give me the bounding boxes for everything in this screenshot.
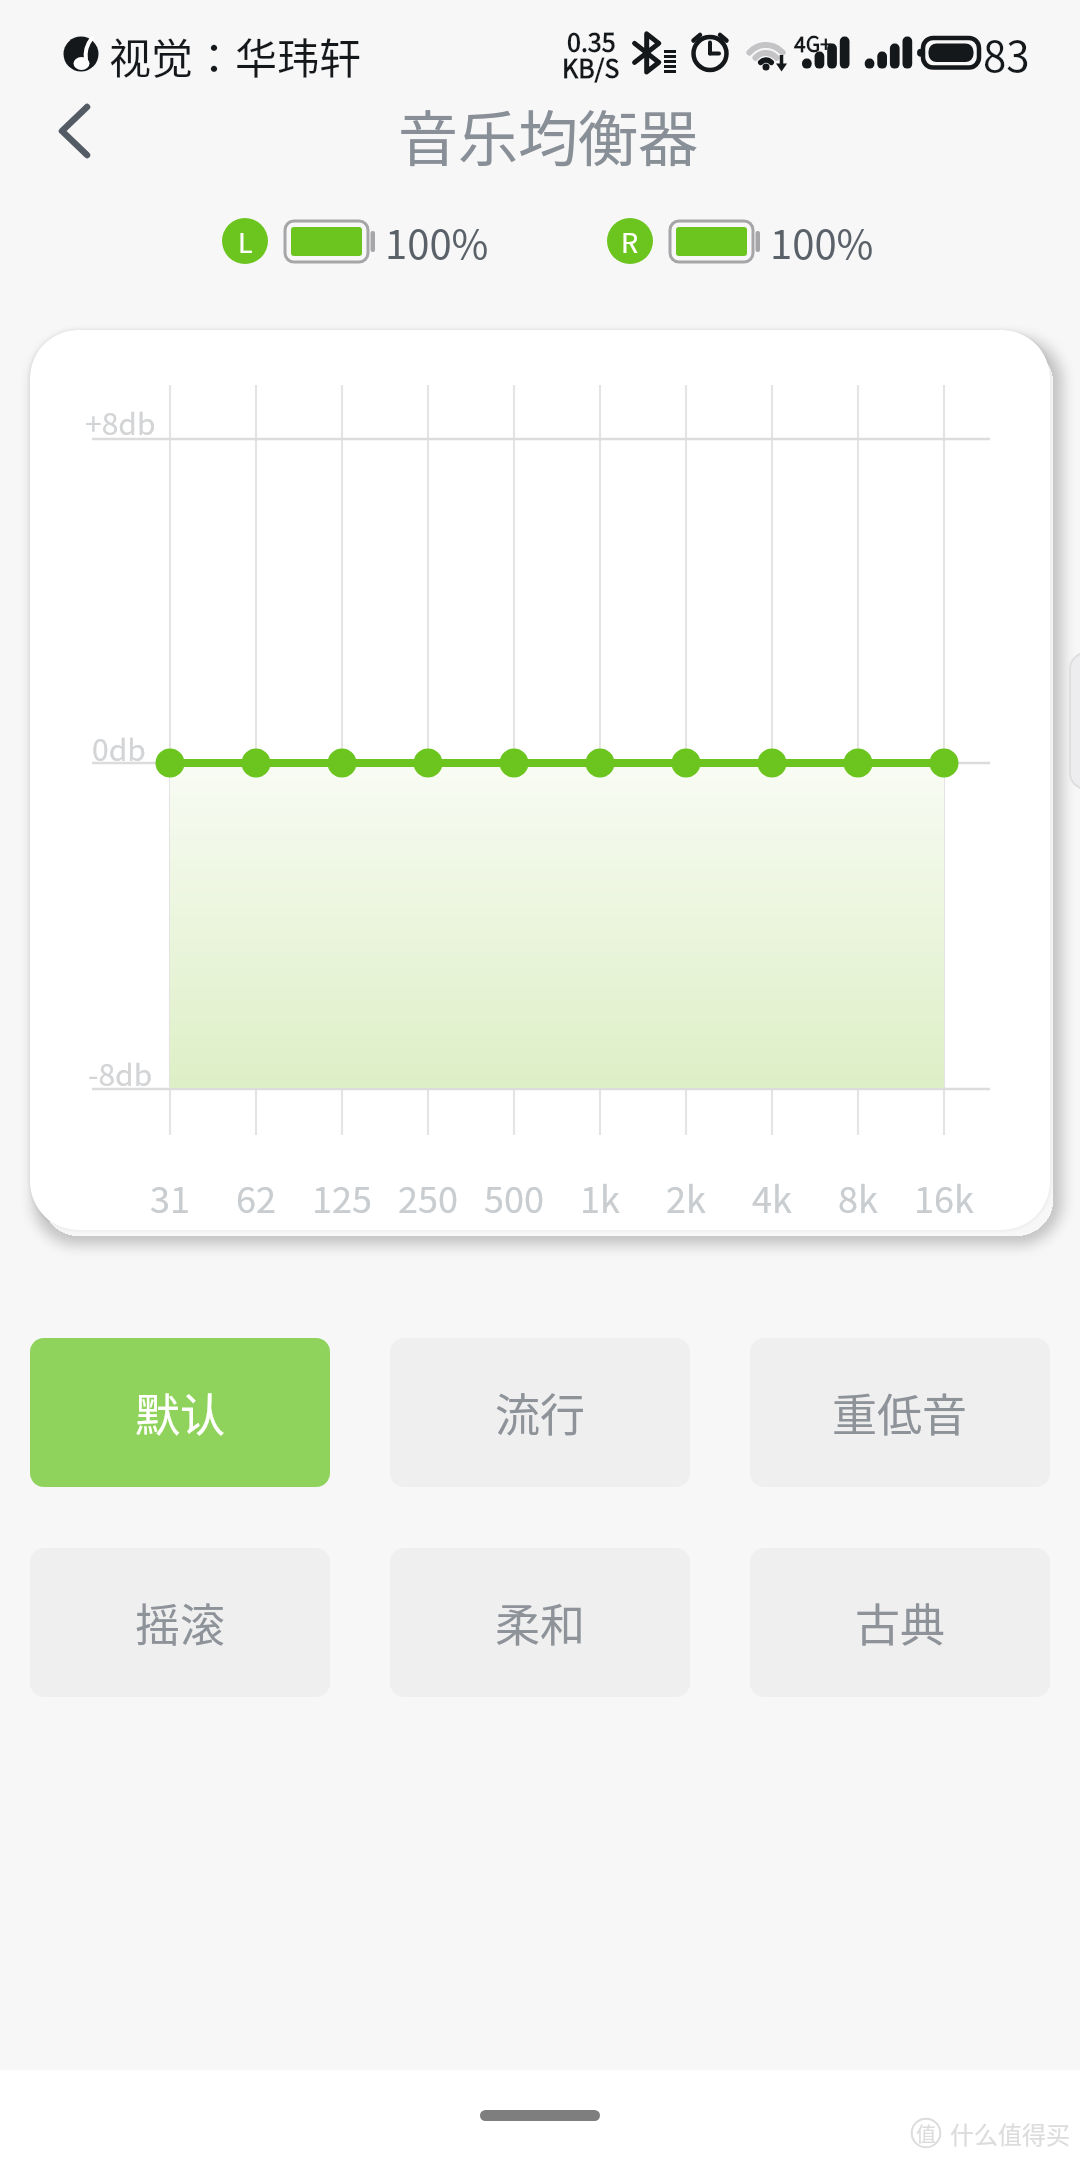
staticText: 流行 <box>495 1380 586 1445</box>
staticText: 音乐均衡器 <box>398 91 698 178</box>
staticText: 4G+ <box>794 28 832 58</box>
staticText: 视觉：华玮轩 <box>109 25 362 86</box>
staticText: 4k <box>752 1171 792 1223</box>
staticText: 古典 <box>855 1590 946 1655</box>
staticText: 摇滚 <box>135 1590 226 1655</box>
staticText: -8db <box>88 1051 153 1094</box>
button[interactable]: 重低音 <box>750 1338 1050 1487</box>
button[interactable]: 古典 <box>750 1548 1050 1697</box>
button[interactable] <box>40 95 110 170</box>
button[interactable]: 流行 <box>390 1338 690 1487</box>
staticText: 100% <box>385 213 489 271</box>
staticText: 1k <box>580 1171 620 1223</box>
button[interactable]: 摇滚 <box>30 1548 330 1697</box>
staticText: 0db <box>92 726 146 769</box>
staticText: KB/S <box>562 49 620 85</box>
staticText: 8k <box>838 1171 878 1223</box>
staticText: 125 <box>312 1171 372 1223</box>
staticText: R <box>621 222 639 261</box>
staticText: 默认 <box>135 1380 226 1445</box>
staticText: 16k <box>914 1171 974 1223</box>
staticText: 31 <box>150 1171 190 1223</box>
button[interactable]: 默认 <box>30 1338 330 1487</box>
staticText: 100% <box>770 213 874 271</box>
staticText: 什么值得买 <box>950 2116 1070 2151</box>
staticText: 83 <box>983 23 1030 84</box>
staticText: 0.35 <box>567 23 616 59</box>
staticText: 值 <box>916 2119 936 2148</box>
button[interactable]: 柔和 <box>390 1548 690 1697</box>
staticText: +8db <box>85 400 156 443</box>
staticText: 重低音 <box>832 1380 968 1445</box>
staticText: 2k <box>666 1171 706 1223</box>
staticText: 62 <box>236 1171 276 1223</box>
staticText: 柔和 <box>495 1590 586 1655</box>
staticText: L <box>238 222 253 261</box>
staticText: 250 <box>398 1171 458 1223</box>
staticText: 500 <box>484 1171 544 1223</box>
